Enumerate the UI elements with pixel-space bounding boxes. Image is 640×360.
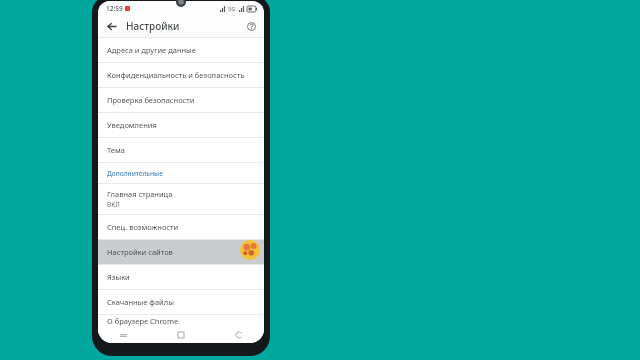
- staticText: Дополнительные: [107, 169, 163, 178]
- button[interactable]: Проверка безопасности: [98, 87, 264, 112]
- button[interactable]: Спец. возможности: [98, 214, 264, 239]
- staticText: 12:59: [106, 4, 123, 13]
- staticText: Настройки: [126, 19, 180, 33]
- staticText: О браузере Chrome: [107, 316, 179, 326]
- staticText: Конфиденциальность и безопасность: [107, 70, 245, 80]
- staticText: Настройки сайтов: [107, 247, 173, 257]
- button[interactable]: Уведомления: [98, 112, 264, 137]
- staticText: Языки: [107, 272, 130, 282]
- staticText: Тема: [107, 145, 125, 155]
- button[interactable]: Главная страница: [98, 183, 264, 214]
- staticText: Спец. возможности: [107, 222, 179, 232]
- staticText: Скачанные файлы: [107, 297, 174, 307]
- staticText: Адреса и другие данные: [107, 45, 196, 55]
- button[interactable]: Меню: [116, 328, 130, 342]
- button[interactable]: Справка: [242, 17, 260, 35]
- staticText: Проверка безопасности: [107, 95, 195, 105]
- staticText: Уведомления: [107, 120, 157, 130]
- button[interactable]: Скачанные файлы: [98, 289, 264, 314]
- button[interactable]: Назад: [102, 17, 120, 35]
- button[interactable]: Настройки сайтов: [98, 239, 264, 264]
- button[interactable]: Назад: [232, 328, 246, 342]
- button[interactable]: О браузере Chrome: [98, 314, 264, 327]
- button[interactable]: Тема: [98, 137, 264, 162]
- button[interactable]: Языки: [98, 264, 264, 289]
- button[interactable]: Адреса и другие данные: [98, 37, 264, 62]
- staticText: Главная страница: [107, 189, 173, 199]
- button[interactable]: Конфиденциальность и безопасность: [98, 62, 264, 87]
- staticText: 5G: [228, 5, 236, 12]
- button[interactable]: Главный экран: [174, 328, 188, 342]
- staticText: ВКЛ: [107, 200, 120, 209]
